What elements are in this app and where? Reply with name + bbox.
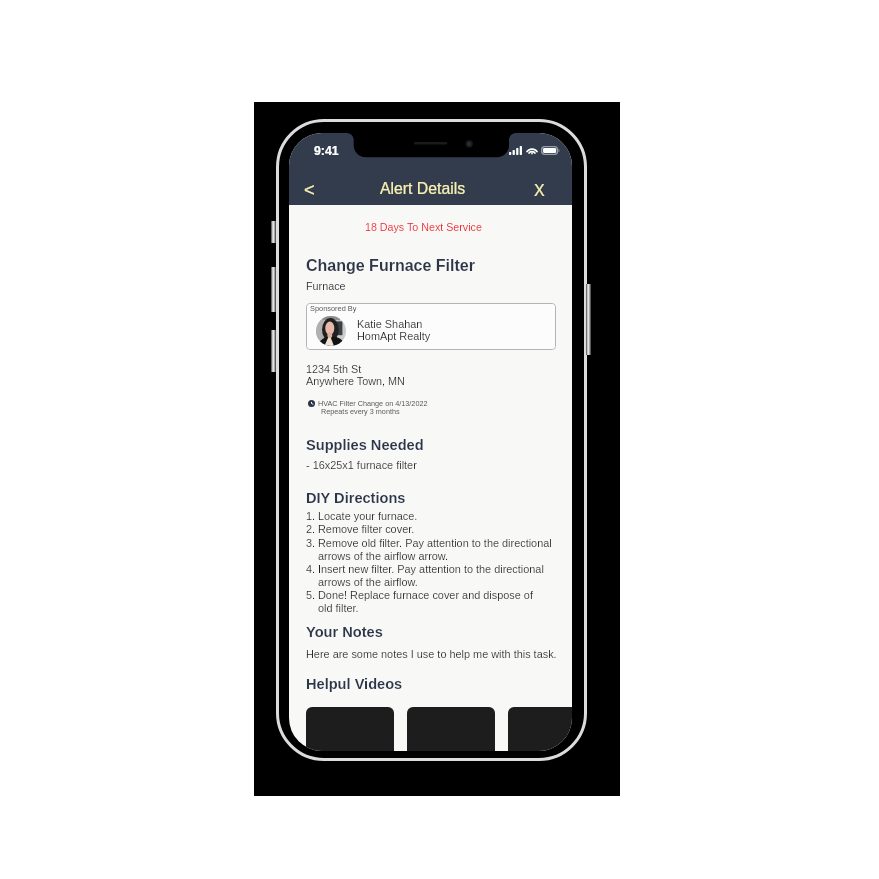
staticText: Alert Details	[380, 180, 466, 198]
staticText: Sponsored By	[310, 304, 357, 312]
staticText: Your Notes	[306, 624, 383, 640]
staticText: Locate your furnace.	[318, 510, 418, 522]
staticText: 9:41	[314, 144, 339, 158]
staticText: old filter.	[318, 602, 359, 614]
staticText: 1.	[306, 510, 316, 522]
staticText: Furnace	[306, 280, 346, 292]
staticText: HVAC Filter Change on 4/13/2022	[318, 399, 428, 407]
staticText: DIY Directions	[306, 490, 406, 506]
button[interactable]: Sponsored By	[306, 303, 556, 350]
staticText: X	[534, 182, 545, 200]
staticText: Supplies Needed	[306, 437, 424, 453]
staticText: Insert new filter. Pay attention to the …	[318, 563, 544, 575]
staticText: 3.	[306, 537, 316, 549]
staticText: 5.	[306, 589, 316, 601]
staticText: HomApt Realty	[357, 330, 431, 342]
button[interactable]: Play video	[508, 707, 572, 751]
staticText: Repeats every 3 months	[321, 407, 400, 415]
staticText: 1234 5th St	[306, 363, 362, 375]
staticText: Anywhere Town, MN	[306, 375, 405, 387]
staticText: Here are some notes I use to help me wit…	[306, 648, 557, 660]
button[interactable]: Alert Details	[380, 180, 466, 198]
staticText: 18 Days To Next Service	[365, 221, 482, 233]
staticText: Done! Replace furnace cover and dispose …	[318, 589, 533, 601]
button[interactable]: Back	[296, 176, 322, 202]
staticText: 4.	[306, 563, 316, 575]
staticText: Remove filter cover.	[318, 523, 415, 535]
staticText: arrows of the airflow.	[318, 576, 418, 588]
staticText: Change Furnace Filter	[306, 257, 475, 275]
staticText: - 16x25x1 furnace filter	[306, 459, 417, 471]
staticText: Remove old filter. Pay attention to the …	[318, 537, 552, 549]
button[interactable]: Play video	[407, 707, 495, 751]
button[interactable]: Play video	[306, 707, 394, 751]
staticText: <	[304, 179, 315, 200]
staticText: Katie Shahan	[357, 318, 423, 330]
staticText: Helpul Videos	[306, 676, 403, 692]
button[interactable]: Close	[527, 178, 552, 204]
staticText: 2.	[306, 523, 316, 535]
staticText: arrows of the airflow arrow.	[318, 550, 449, 562]
